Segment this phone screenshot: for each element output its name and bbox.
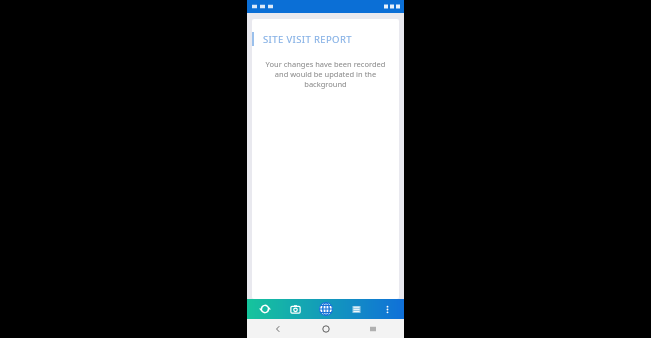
button[interactable]: Sync — [252, 299, 278, 319]
button[interactable]: More options — [374, 299, 400, 319]
button[interactable]: Reports — [343, 299, 369, 319]
button[interactable]: Camera — [282, 299, 308, 319]
button[interactable]: Back — [261, 319, 295, 338]
button[interactable]: Recent apps — [356, 319, 390, 338]
button[interactable]: Map — [313, 299, 339, 319]
staticText: SITE VISIT REPORT — [263, 33, 352, 46]
button[interactable]: Home — [309, 319, 343, 338]
staticText: Your changes have been recorded and woul… — [261, 59, 390, 89]
